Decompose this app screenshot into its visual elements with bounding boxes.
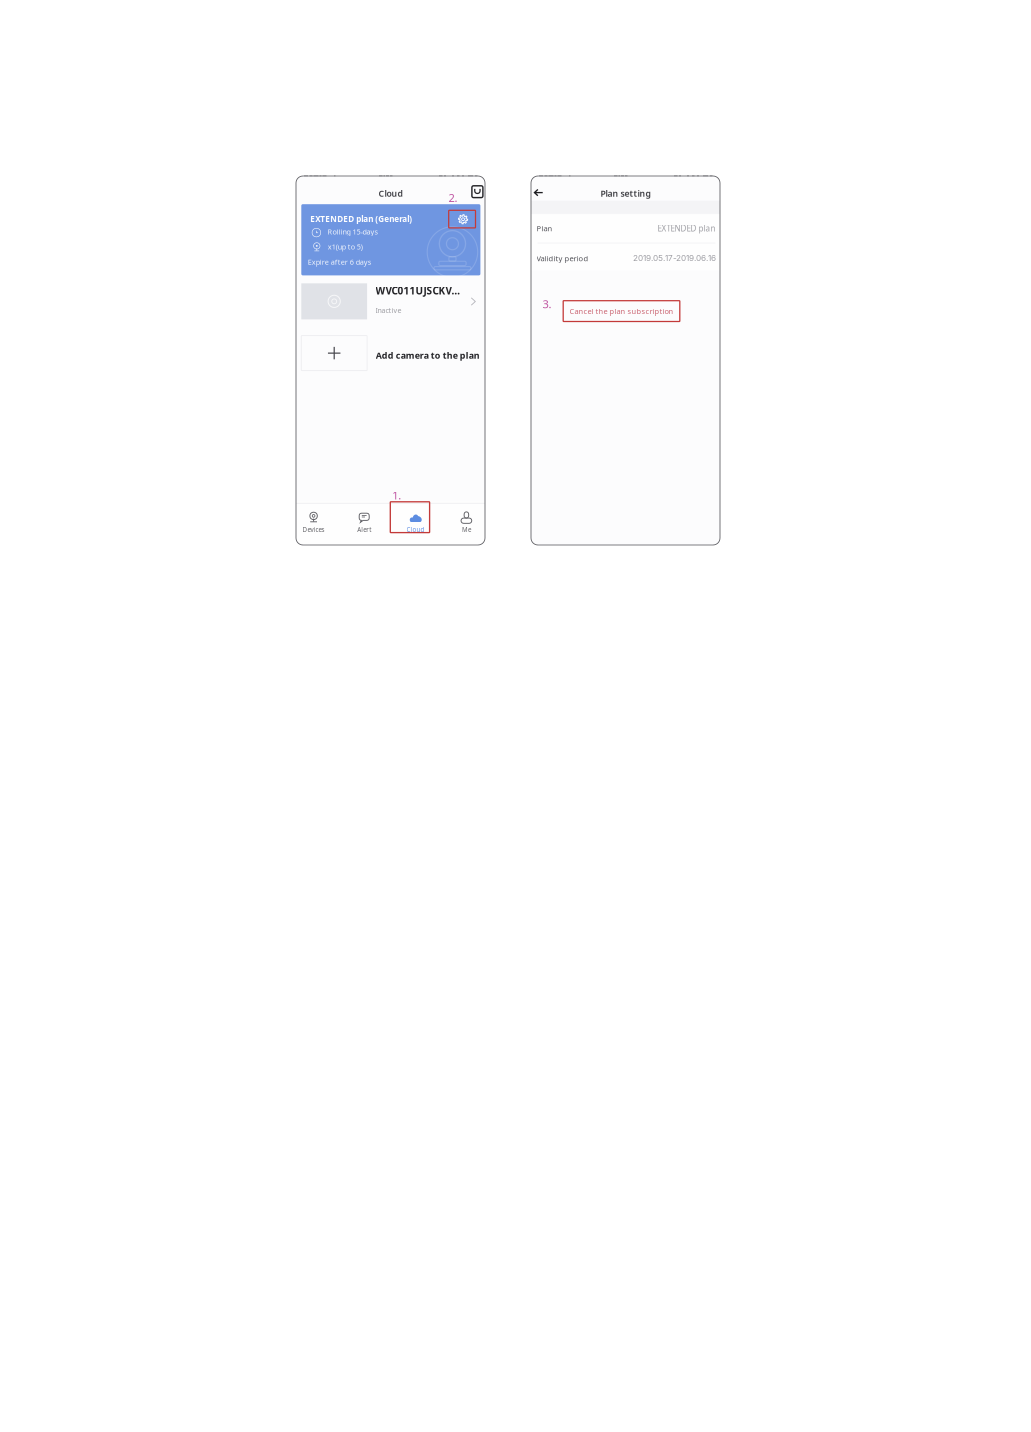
button[interactable]: Add camera to the plan bbox=[301, 336, 480, 371]
staticText: x1(up to 5) bbox=[328, 242, 363, 252]
staticText: 2. bbox=[448, 190, 457, 205]
staticText: EXTENDED plan bbox=[657, 223, 715, 234]
staticText: Plan bbox=[537, 223, 553, 233]
staticText: 2019.05.17-2019.06.16 bbox=[633, 253, 716, 263]
staticText: Me bbox=[462, 525, 471, 534]
staticText: 3. bbox=[542, 296, 551, 312]
button[interactable]: Me bbox=[443, 503, 489, 534]
button[interactable]: Alert bbox=[341, 503, 387, 534]
button[interactable]: Store bbox=[469, 184, 485, 200]
staticText: Inactive bbox=[376, 305, 402, 315]
button[interactable]: Cloud bbox=[393, 503, 439, 534]
staticText: Add camera to the plan bbox=[376, 349, 480, 361]
staticText: 1. bbox=[392, 488, 401, 503]
staticText: Validity period bbox=[537, 253, 589, 263]
staticText: Devices bbox=[303, 525, 325, 534]
staticText: WVC011UJSCKV… bbox=[376, 284, 461, 297]
button[interactable]: Cancel the plan subscription bbox=[563, 301, 680, 321]
button[interactable]: WVC011UJSCKV… bbox=[301, 283, 480, 319]
button[interactable]: Devices bbox=[291, 503, 337, 534]
staticText: Cloud bbox=[378, 187, 402, 199]
staticText: Cloud bbox=[407, 525, 425, 534]
button[interactable]: EXTENDED plan (General) bbox=[301, 204, 480, 275]
staticText: EXTENDED plan (General) bbox=[310, 213, 412, 224]
staticText: Rolling 15-days bbox=[327, 227, 377, 237]
staticText: Alert bbox=[357, 525, 371, 534]
button[interactable]: Back bbox=[530, 185, 546, 201]
staticText: Cancel the plan subscription bbox=[569, 306, 673, 316]
staticText: Expire after 6 days bbox=[308, 257, 371, 267]
staticText: Plan setting bbox=[600, 187, 650, 199]
